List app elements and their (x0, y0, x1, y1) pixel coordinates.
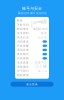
button[interactable]: 登录密码 (15, 31, 49, 35)
button[interactable]: 手机号码 (15, 23, 49, 27)
staticText: 小明 (41, 19, 47, 22)
staticText: 退出登录 (26, 83, 38, 86)
button[interactable]: 震动反馈 (15, 48, 49, 52)
staticText: 震动反馈 (17, 48, 29, 52)
staticText: 修改 (41, 31, 47, 35)
button[interactable]: 声音提醒 (15, 44, 49, 48)
staticText: 关于我们 (17, 69, 29, 73)
staticText: 实名认证 (17, 36, 29, 39)
staticText: Account and security (18, 11, 46, 15)
button[interactable]: 消息推送 (15, 39, 49, 44)
staticText: 简体中文 (35, 61, 47, 64)
staticText: 自动更新 (17, 57, 29, 60)
staticText: 12.5 MB (35, 65, 47, 68)
button[interactable]: 语言设置 (15, 60, 49, 65)
staticText: 语言设置 (17, 61, 29, 64)
staticText: 邮箱地址 (17, 27, 29, 31)
button[interactable]: 关于我们 (15, 69, 49, 73)
staticText: 账号与安全 (22, 6, 42, 11)
button[interactable]: 实名认证 (15, 35, 49, 39)
staticText: 夜间模式 (17, 52, 29, 56)
button[interactable]: 退出登录 (10, 82, 53, 87)
staticText: 隐私政策 (17, 73, 29, 77)
button[interactable]: 昵称 (15, 18, 49, 23)
button[interactable]: 自动更新 (15, 56, 49, 60)
staticText: 声音提醒 (17, 44, 29, 47)
staticText: v2.1.0 (38, 69, 47, 73)
button[interactable]: 邮箱地址 (15, 27, 49, 31)
staticText: 已认证 (38, 36, 47, 39)
staticText: 清除缓存 (17, 65, 29, 68)
button[interactable]: 隐私政策 (15, 73, 49, 77)
staticText: ab@cd.com (33, 27, 47, 31)
button[interactable]: 夜间模式 (15, 52, 49, 56)
staticText: 手机号码 (17, 23, 29, 26)
staticText: 138****8888 (31, 21, 47, 28)
button[interactable]: 清除缓存 (15, 65, 49, 69)
staticText: 登录密码 (17, 31, 29, 35)
staticText: 消息推送 (17, 40, 29, 43)
staticText: 昵称 (17, 19, 23, 22)
